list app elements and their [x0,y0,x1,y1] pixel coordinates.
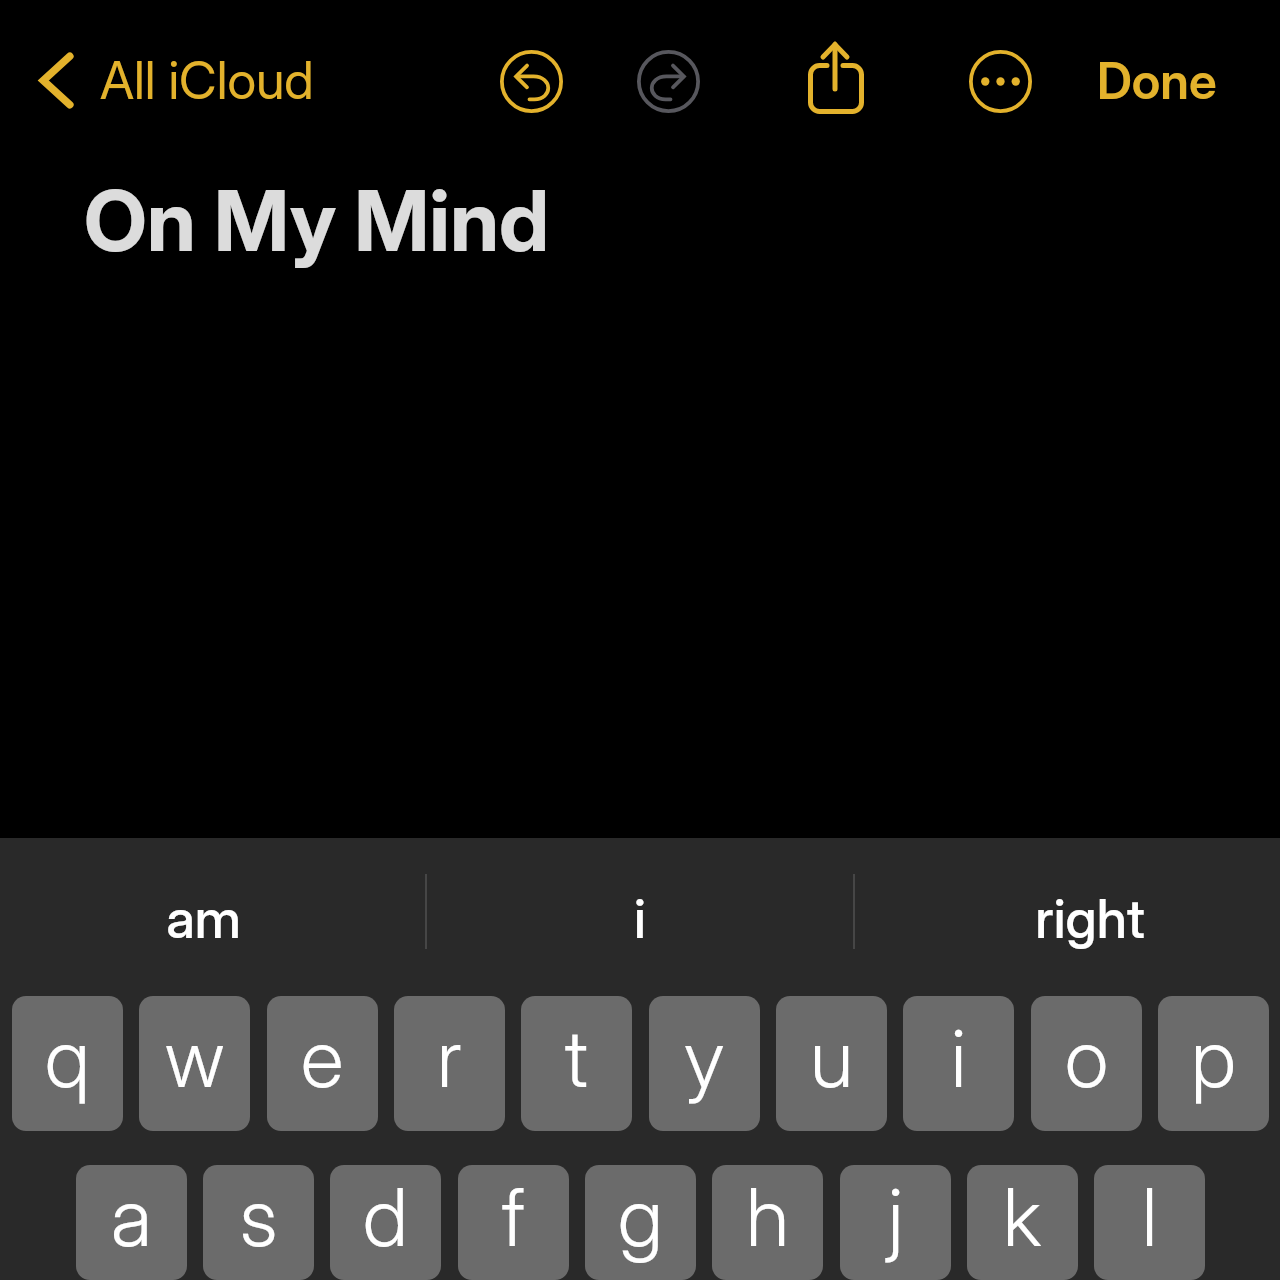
button[interactable]: d [330,1165,441,1280]
staticText: All iCloud [100,49,314,112]
staticText: d [363,1168,408,1265]
button[interactable]: t [521,996,632,1131]
button[interactable]: More options [969,50,1032,113]
staticText: y [684,1009,725,1106]
button[interactable]: h [712,1165,823,1280]
staticText: g [618,1168,663,1265]
button[interactable]: right [880,838,1280,996]
button[interactable]: w [139,996,250,1131]
staticText: u [810,1009,854,1106]
staticText: r [437,1009,462,1106]
staticText: f [502,1168,525,1265]
staticText: i [634,886,646,951]
button[interactable]: p [1158,996,1269,1131]
staticText: right [1035,886,1145,951]
button[interactable]: y [649,996,760,1131]
button[interactable]: am [0,838,406,996]
staticText: w [165,1009,225,1106]
staticText: On My Mind [84,170,550,272]
staticText: t [565,1009,588,1106]
staticText: s [240,1168,278,1265]
staticText: e [301,1009,344,1106]
button[interactable]: i [903,996,1014,1131]
button[interactable]: g [585,1165,696,1280]
button[interactable]: s [203,1165,314,1280]
staticText: p [1191,1009,1236,1106]
button[interactable]: f [458,1165,569,1280]
staticText: Done [1097,51,1217,111]
button[interactable]: l [1094,1165,1205,1280]
button[interactable]: r [394,996,505,1131]
staticText: k [1003,1168,1042,1265]
button[interactable]: Undo [500,50,563,113]
button[interactable]: Done [1085,37,1229,125]
button[interactable]: q [12,996,123,1131]
button[interactable]: u [776,996,887,1131]
button[interactable]: Share [800,38,872,120]
button[interactable]: All iCloud [20,26,330,134]
staticText: q [45,1009,90,1106]
staticText: j [888,1168,904,1265]
staticText: i [951,1009,967,1106]
button[interactable]: Redo [637,50,700,113]
staticText: o [1065,1009,1109,1106]
button[interactable]: o [1031,996,1142,1131]
button[interactable]: i [425,838,854,996]
staticText: a [111,1168,152,1265]
button[interactable]: j [840,1165,951,1280]
staticText: am [166,886,241,951]
button[interactable]: k [967,1165,1078,1280]
staticText: l [1142,1168,1158,1265]
button[interactable]: a [76,1165,187,1280]
staticText: h [746,1168,790,1265]
button[interactable]: e [267,996,378,1131]
